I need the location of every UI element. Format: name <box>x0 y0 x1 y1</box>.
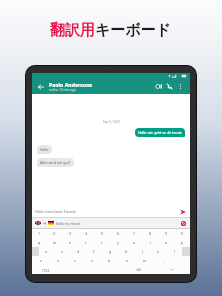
staticText: 5 <box>101 231 104 236</box>
staticText: 8 <box>149 231 152 236</box>
button[interactable]: Enter <box>155 265 190 274</box>
button[interactable]: 0 <box>174 229 190 238</box>
button[interactable]: e <box>62 238 78 247</box>
staticText: 2 <box>53 231 56 236</box>
staticText: m <box>143 258 147 263</box>
staticText: Hallo my friend <box>56 221 179 226</box>
button[interactable]: z <box>32 256 49 265</box>
button[interactable]: 5 <box>94 229 110 238</box>
staticText: w <box>53 240 56 245</box>
staticText: ↵ <box>171 268 174 272</box>
staticText: y <box>117 240 119 245</box>
staticText: e <box>69 240 72 245</box>
button[interactable]: j <box>134 247 150 256</box>
button[interactable]: l <box>166 247 182 256</box>
button[interactable]: 7 <box>126 229 142 238</box>
button[interactable]: s <box>54 247 70 256</box>
button[interactable]: d <box>70 247 86 256</box>
button[interactable]: g <box>102 247 118 256</box>
button[interactable]: w <box>47 238 62 247</box>
button[interactable]: 6 <box>110 229 126 238</box>
staticText: Hallo <box>40 147 49 152</box>
button[interactable]: q <box>32 238 47 247</box>
button[interactable]: 9 <box>158 229 174 238</box>
button[interactable]: x <box>49 256 66 265</box>
staticText: Sep 5, 14:32 <box>103 120 120 124</box>
staticText: ?123 <box>42 268 50 272</box>
button[interactable]: Target language German <box>48 221 54 225</box>
button[interactable]: k <box>150 247 166 256</box>
staticText: h <box>125 249 128 254</box>
button[interactable]: Disable translation <box>179 219 187 227</box>
button[interactable]: Backspace <box>122 265 155 274</box>
button[interactable]: p <box>174 238 190 247</box>
button[interactable]: r <box>78 238 94 247</box>
staticText: j <box>142 249 143 254</box>
staticText: 0 <box>181 231 184 236</box>
staticText: g <box>109 249 112 254</box>
staticText: t <box>101 240 103 245</box>
staticText: ⌫ <box>136 268 141 272</box>
button[interactable]: h <box>118 247 134 256</box>
staticText: 3 <box>69 231 72 236</box>
button[interactable]: Alles wird mir gut? <box>37 158 74 167</box>
staticText: o <box>165 240 168 245</box>
staticText: s <box>61 249 63 254</box>
staticText: a <box>45 249 48 254</box>
button[interactable]: Source language English <box>35 221 41 225</box>
button[interactable]: Hallo <box>37 145 52 154</box>
button[interactable]: Hallo wie geht es dir heute <box>135 128 185 137</box>
staticText: Hallo wie geht es dir heute <box>138 130 182 135</box>
staticText: c <box>74 258 76 263</box>
staticText: x <box>57 258 59 263</box>
staticText: 7 <box>133 231 136 236</box>
button[interactable]: a <box>39 247 54 256</box>
button[interactable]: m <box>136 256 154 265</box>
staticText: n <box>126 258 129 263</box>
staticText: q <box>38 240 41 245</box>
button[interactable]: t <box>94 238 110 247</box>
button[interactable]: b <box>100 256 118 265</box>
staticText: u <box>133 240 136 245</box>
staticText: 9 <box>165 231 168 236</box>
button[interactable]: 2 <box>47 229 62 238</box>
button[interactable]: i <box>142 238 158 247</box>
button[interactable]: 4 <box>78 229 94 238</box>
button[interactable]: 3 <box>62 229 78 238</box>
staticText: 4 <box>85 231 88 236</box>
staticText: Hallo mein lieber Freund <box>35 209 178 214</box>
staticText: 6 <box>117 231 120 236</box>
button[interactable]: 1 <box>32 229 47 238</box>
staticText: 1 <box>38 231 41 236</box>
staticText: , <box>163 258 164 263</box>
button[interactable]: n <box>118 256 136 265</box>
button[interactable]: Send <box>178 207 187 216</box>
staticText: k <box>157 249 159 254</box>
button[interactable]: 8 <box>142 229 158 238</box>
button[interactable]: Video call <box>153 81 164 92</box>
button[interactable]: v <box>83 256 100 265</box>
button[interactable]: o <box>158 238 174 247</box>
button[interactable]: More options <box>175 81 186 92</box>
staticText: . <box>181 258 182 263</box>
staticText: i <box>150 240 151 245</box>
staticText: Alles wird mir gut? <box>40 160 71 165</box>
button[interactable]: u <box>126 238 142 247</box>
staticText: f <box>93 249 95 254</box>
staticText: v <box>91 258 93 263</box>
staticText: b <box>108 258 111 263</box>
staticText: d <box>77 249 80 254</box>
staticText: 翻訳用キーボード <box>50 21 172 40</box>
staticText: online 12 min ago <box>49 88 76 92</box>
button[interactable]: Symbols <box>32 265 59 274</box>
button[interactable]: , <box>154 256 172 265</box>
staticText: l <box>174 249 175 254</box>
button[interactable]: Back <box>36 82 46 92</box>
button[interactable]: f <box>86 247 102 256</box>
staticText: p <box>181 240 184 245</box>
button[interactable]: y <box>110 238 126 247</box>
button[interactable]: Call <box>164 81 175 92</box>
button[interactable]: c <box>66 256 83 265</box>
